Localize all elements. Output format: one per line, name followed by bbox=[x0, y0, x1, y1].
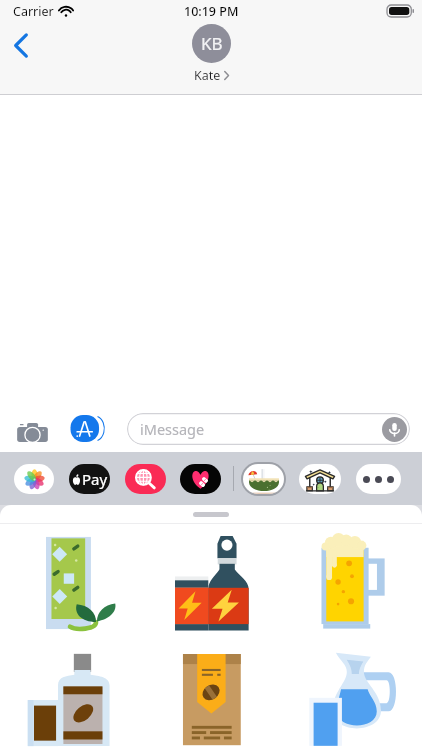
button[interactable]: Camera bbox=[13, 414, 49, 444]
button[interactable]: KB bbox=[192, 24, 231, 84]
button[interactable]: Mojito sticker bbox=[0, 524, 140, 641]
staticText: KB bbox=[201, 32, 223, 55]
staticText: Kate bbox=[194, 67, 221, 84]
staticText: Pay bbox=[82, 469, 108, 489]
button[interactable]: Beer sticker bbox=[281, 524, 422, 641]
button[interactable]: App bbox=[356, 464, 401, 494]
button[interactable]: Dictate bbox=[381, 416, 407, 442]
button[interactable]: Coffee bag sticker bbox=[140, 641, 281, 750]
button[interactable]: App bbox=[180, 464, 221, 494]
button[interactable]: App bbox=[299, 464, 341, 494]
button[interactable]: App Store bbox=[66, 413, 108, 444]
button[interactable]: iMessage bbox=[127, 413, 410, 445]
button[interactable]: Back bbox=[2, 23, 40, 67]
button[interactable]: App bbox=[125, 464, 166, 494]
button[interactable]: Energy drink sticker bbox=[140, 524, 281, 641]
button[interactable]: App bbox=[14, 464, 54, 494]
staticText: Carrier bbox=[13, 3, 54, 20]
button[interactable]: Whiskey sticker bbox=[0, 641, 140, 750]
staticText: 10:19 PM bbox=[184, 3, 239, 20]
staticText: iMessage bbox=[140, 419, 205, 439]
button[interactable]: Stickers app bbox=[241, 462, 286, 496]
button[interactable]: Water jug sticker bbox=[281, 641, 422, 750]
button[interactable]: App bbox=[69, 464, 110, 494]
